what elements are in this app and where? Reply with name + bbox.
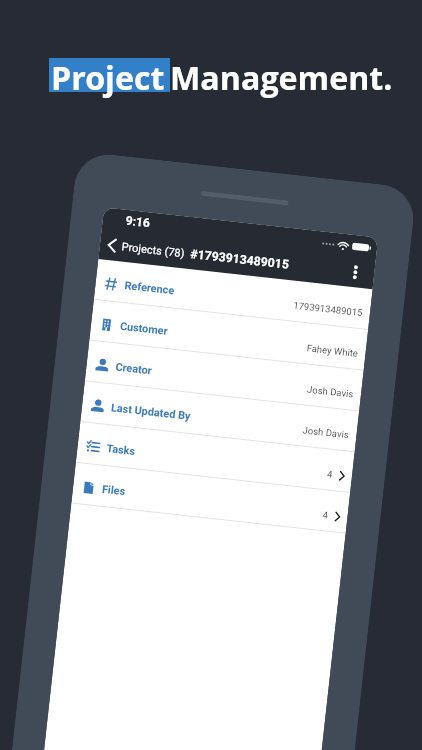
staticText: Reference bbox=[124, 279, 175, 297]
staticText: Project bbox=[51, 56, 165, 100]
staticText: 4 bbox=[326, 468, 334, 480]
staticText: Josh Davis bbox=[307, 384, 355, 400]
button[interactable]: Creator bbox=[85, 340, 364, 411]
button[interactable]: Back bbox=[103, 233, 121, 257]
staticText: Management. bbox=[170, 56, 393, 100]
staticText: Customer bbox=[119, 320, 168, 338]
staticText: #1793913489015 bbox=[190, 247, 290, 272]
staticText: Creator bbox=[115, 360, 153, 377]
staticText: Projects (78) bbox=[121, 240, 186, 260]
staticText: 1793913489015 bbox=[293, 300, 364, 318]
button[interactable]: Tasks bbox=[76, 422, 355, 493]
staticText: 4 bbox=[322, 509, 329, 521]
button[interactable]: Customer bbox=[89, 300, 368, 371]
staticText: Josh Davis bbox=[302, 424, 350, 440]
staticText: Last Updated By bbox=[110, 401, 191, 423]
staticText: 9:16 bbox=[125, 214, 151, 230]
staticText: Files bbox=[101, 483, 127, 498]
button[interactable]: More options bbox=[346, 263, 364, 281]
button[interactable]: Reference bbox=[94, 259, 373, 330]
staticText: Fahey White bbox=[306, 342, 359, 359]
button[interactable]: Files bbox=[71, 463, 350, 534]
button[interactable]: Last Updated By bbox=[80, 381, 359, 452]
staticText: Tasks bbox=[106, 442, 136, 458]
